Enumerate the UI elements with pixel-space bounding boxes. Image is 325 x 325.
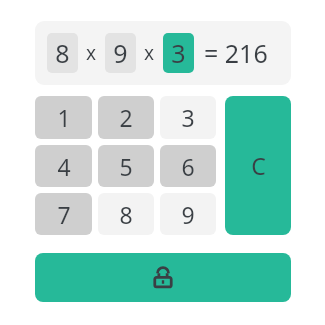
button[interactable]: 5: [98, 145, 154, 187]
button[interactable]: 9: [105, 33, 136, 73]
button[interactable]: 3: [163, 33, 194, 73]
staticText: = 216: [204, 36, 268, 70]
button[interactable]: 3: [160, 96, 216, 139]
button[interactable]: 6: [160, 145, 216, 187]
staticText: 3: [181, 102, 195, 133]
staticText: 3: [171, 36, 186, 70]
staticText: 7: [57, 199, 71, 230]
button[interactable]: 7: [35, 193, 92, 235]
staticText: 5: [119, 151, 133, 182]
staticText: 8: [119, 199, 133, 230]
staticText: x: [86, 40, 97, 66]
staticText: 1: [57, 102, 71, 133]
button[interactable]: 9: [160, 193, 216, 235]
staticText: C: [251, 150, 266, 181]
staticText: 8: [55, 36, 70, 70]
button[interactable]: 8: [35, 21, 291, 85]
button[interactable]: Lock: [35, 253, 291, 302]
staticText: 6: [181, 151, 195, 182]
staticText: 9: [181, 199, 195, 230]
button[interactable]: 4: [35, 145, 92, 187]
button[interactable]: 8: [47, 33, 78, 73]
button[interactable]: 2: [98, 96, 154, 139]
staticText: 4: [57, 151, 71, 182]
button[interactable]: C: [225, 96, 291, 235]
button[interactable]: 1: [35, 96, 92, 139]
staticText: 2: [119, 102, 133, 133]
staticText: x: [144, 40, 155, 66]
staticText: 9: [113, 36, 128, 70]
button[interactable]: 8: [98, 193, 154, 235]
